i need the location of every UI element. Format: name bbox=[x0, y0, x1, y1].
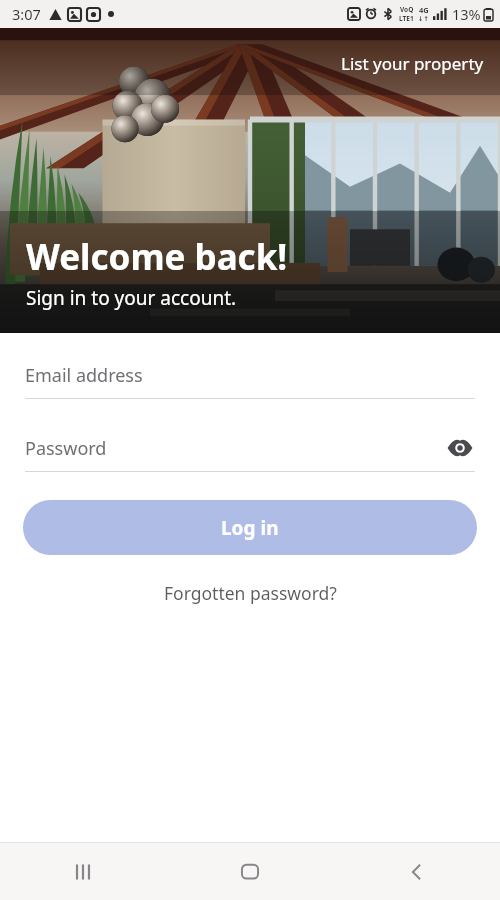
button[interactable]: Home bbox=[166, 843, 333, 900]
button[interactable]: Show password bbox=[445, 435, 475, 461]
staticText: List your property bbox=[341, 52, 484, 75]
button[interactable]: Log in bbox=[23, 500, 477, 555]
button[interactable]: List your property bbox=[333, 48, 492, 79]
staticText: Forgotten password? bbox=[164, 581, 337, 605]
staticText: Log in bbox=[221, 515, 279, 541]
button[interactable]: Email address bbox=[25, 362, 475, 399]
button[interactable]: Back bbox=[333, 843, 500, 900]
staticText: Email address bbox=[25, 363, 143, 388]
staticText: LTE1 bbox=[399, 14, 414, 23]
staticText: Welcome back! bbox=[26, 233, 288, 281]
button[interactable]: Password bbox=[25, 435, 475, 472]
staticText: 4G bbox=[419, 5, 429, 15]
staticText: VoQ bbox=[400, 5, 414, 14]
button[interactable]: Forgotten password? bbox=[154, 577, 347, 609]
staticText: Sign in to your account. bbox=[26, 285, 237, 311]
staticText: Password bbox=[25, 436, 107, 461]
staticText: 3:07 bbox=[12, 4, 41, 24]
staticText: ↓↑ bbox=[418, 15, 429, 23]
staticText: 13% bbox=[452, 4, 481, 24]
button[interactable]: Recents bbox=[0, 843, 166, 900]
